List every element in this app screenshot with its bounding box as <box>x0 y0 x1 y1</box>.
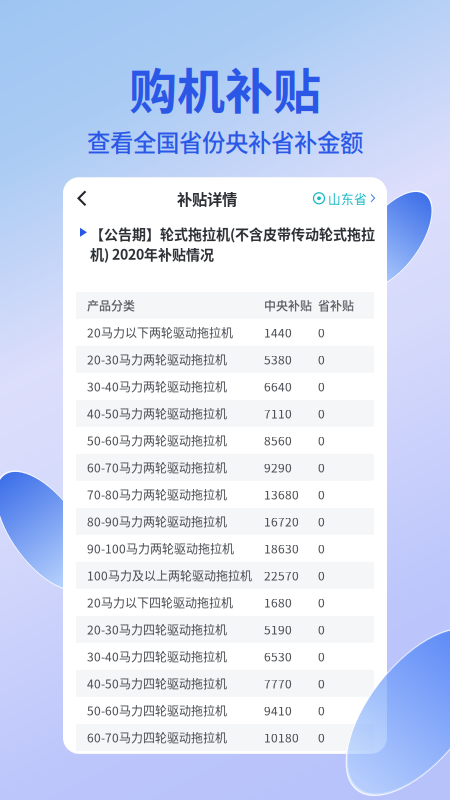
staticText: 7110 <box>264 405 292 422</box>
button[interactable]: 山东省 <box>313 178 387 218</box>
staticText: 0 <box>318 432 325 449</box>
staticText: 40-50马力四轮驱动拖拉机 <box>87 675 227 692</box>
staticText: 18630 <box>264 540 299 557</box>
staticText: 7770 <box>264 675 292 692</box>
staticText: 40-50马力两轮驱动拖拉机 <box>87 405 227 422</box>
staticText: 省补贴 <box>318 297 354 314</box>
staticText: 16720 <box>264 513 299 530</box>
staticText: 90-100马力两轮驱动拖拉机 <box>87 540 234 557</box>
staticText: 30-40马力两轮驱动拖拉机 <box>87 378 227 395</box>
staticText: 0 <box>318 324 325 341</box>
staticText: 20马力以下两轮驱动拖拉机 <box>87 324 233 341</box>
staticText: 9410 <box>264 702 292 719</box>
staticText: 60-70马力四轮驱动拖拉机 <box>87 729 227 746</box>
staticText: 60-70马力两轮驱动拖拉机 <box>87 459 227 476</box>
staticText: 【公告期】轮式拖拉机(不含皮带传动轮式拖拉机) 2020年补贴情况 <box>90 223 375 264</box>
staticText: 产品分类 <box>87 297 135 314</box>
staticText: 0 <box>318 729 325 746</box>
staticText: 50-60马力两轮驱动拖拉机 <box>87 432 227 449</box>
staticText: 22570 <box>264 567 299 584</box>
staticText: 5190 <box>264 621 292 638</box>
staticText: 6530 <box>264 648 292 665</box>
staticText: 6640 <box>264 378 292 395</box>
staticText: 70-80马力两轮驱动拖拉机 <box>87 486 227 503</box>
staticText: 0 <box>318 702 325 719</box>
staticText: 0 <box>318 540 325 557</box>
staticText: 13680 <box>264 486 299 503</box>
staticText: 山东省 <box>328 189 367 207</box>
staticText: 50-60马力四轮驱动拖拉机 <box>87 702 227 719</box>
staticText: 0 <box>318 378 325 395</box>
staticText: 查看全国省份央补省补金额 <box>87 124 363 158</box>
staticText: 9290 <box>264 459 292 476</box>
staticText: 0 <box>318 486 325 503</box>
staticText: 10180 <box>264 729 299 746</box>
staticText: 0 <box>318 594 325 611</box>
staticText: 购机补贴 <box>129 53 321 122</box>
staticText: 30-40马力四轮驱动拖拉机 <box>87 648 227 665</box>
staticText: 0 <box>318 513 325 530</box>
staticText: 20-30马力两轮驱动拖拉机 <box>87 351 227 368</box>
staticText: 0 <box>318 405 325 422</box>
staticText: 1440 <box>264 324 292 341</box>
staticText: 20马力以下四轮驱动拖拉机 <box>87 594 233 611</box>
staticText: 中央补贴 <box>264 297 312 314</box>
button[interactable]: 返回 <box>63 178 101 218</box>
staticText: 100马力及以上两轮驱动拖拉机 <box>87 567 252 584</box>
staticText: 80-90马力两轮驱动拖拉机 <box>87 513 227 530</box>
staticText: 20-30马力四轮驱动拖拉机 <box>87 621 227 638</box>
staticText: 0 <box>318 675 325 692</box>
staticText: 8560 <box>264 432 292 449</box>
staticText: 0 <box>318 567 325 584</box>
staticText: 补贴详情 <box>177 187 237 209</box>
staticText: 0 <box>318 648 325 665</box>
staticText: 1680 <box>264 594 292 611</box>
staticText: 0 <box>318 351 325 368</box>
staticText: 0 <box>318 459 325 476</box>
staticText: 5380 <box>264 351 292 368</box>
staticText: 0 <box>318 621 325 638</box>
